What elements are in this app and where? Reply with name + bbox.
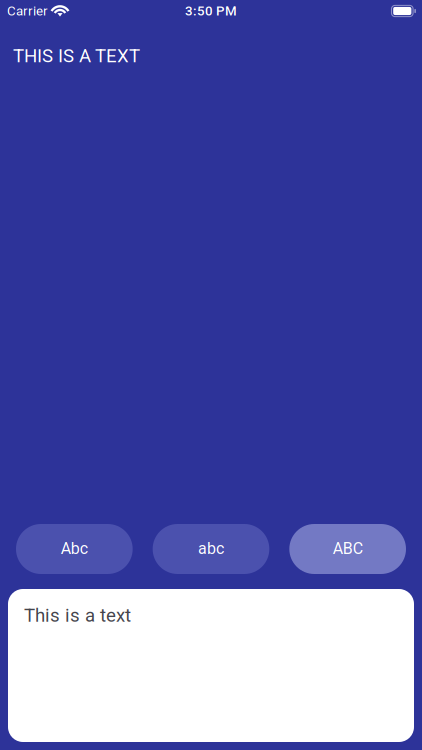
button[interactable]: abc xyxy=(153,524,269,574)
staticText: abc xyxy=(198,539,224,558)
button[interactable]: ABC xyxy=(289,524,406,574)
staticText: This is a text xyxy=(24,604,131,626)
staticText: 3:50 PM xyxy=(185,3,237,19)
button[interactable]: Abc xyxy=(16,524,133,574)
staticText: THIS IS A TEXT xyxy=(13,45,140,67)
staticText: Carrier xyxy=(7,3,48,19)
staticText: ABC xyxy=(333,539,363,558)
staticText: Abc xyxy=(61,539,88,558)
button[interactable]: This is a text xyxy=(8,589,414,742)
